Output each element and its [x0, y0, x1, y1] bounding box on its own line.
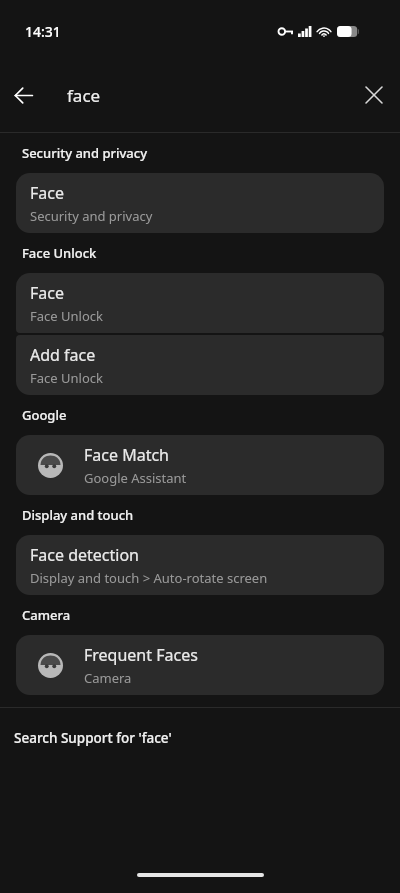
button[interactable]: Add face [16, 335, 384, 395]
staticText: Add face [30, 344, 96, 366]
button[interactable]: Face [16, 173, 384, 233]
button[interactable]: Frequent Faces [16, 635, 384, 695]
button[interactable]: Back [7, 79, 40, 112]
staticText: Search Support for 'face' [14, 729, 172, 747]
button[interactable]: Face detection [16, 535, 384, 595]
staticText: Face Unlock [30, 369, 103, 387]
staticText: Display and touch [22, 506, 134, 524]
staticText: Frequent Faces [84, 644, 198, 666]
staticText: Face Match [84, 444, 169, 466]
staticText: Google [22, 406, 67, 424]
staticText: Face detection [30, 544, 139, 566]
button[interactable]: Clear search [358, 79, 390, 111]
button[interactable]: Face [16, 273, 384, 333]
staticText: Display and touch > Auto-rotate screen [30, 569, 268, 587]
staticText: Camera [84, 669, 132, 687]
staticText: Security and privacy [22, 144, 148, 162]
staticText: face [67, 84, 101, 107]
staticText: Face [30, 282, 64, 304]
staticText: Camera [22, 606, 71, 624]
staticText: Google Assistant [84, 469, 187, 487]
staticText: Face Unlock [30, 307, 103, 325]
button[interactable]: Face Match [16, 435, 384, 495]
button[interactable]: Search Support for 'face' [0, 708, 400, 768]
staticText: Face [30, 182, 64, 204]
staticText: Face Unlock [22, 244, 97, 262]
staticText: Security and privacy [30, 207, 153, 225]
staticText: 14:31 [25, 22, 61, 41]
